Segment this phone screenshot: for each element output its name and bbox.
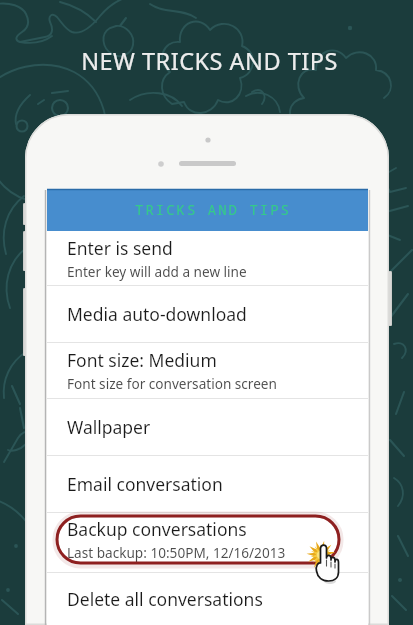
staticText: Email conversation — [67, 472, 223, 496]
staticText: TRICKS AND TIPS — [135, 200, 291, 219]
staticText: Backup conversations — [67, 517, 247, 541]
staticText: NEW TRICKS AND TIPS — [81, 45, 338, 77]
staticText: Enter is send — [67, 236, 173, 260]
button[interactable]: Media auto-download — [47, 286, 368, 342]
button[interactable]: Delete all conversations — [47, 573, 368, 625]
button[interactable]: Email conversation — [47, 456, 368, 512]
staticText: Last backup: 10:50PM, 12/16/2013 — [67, 543, 286, 562]
button[interactable]: Power — [388, 271, 392, 326]
staticText: Media auto-download — [67, 302, 247, 326]
button[interactable]: Volume up — [23, 231, 27, 271]
button[interactable]: Enter is send — [47, 231, 368, 285]
staticText: Font size for conversation screen — [67, 374, 277, 393]
button[interactable]: Silent switch — [23, 203, 27, 225]
button[interactable]: TRICKS AND TIPS — [47, 189, 368, 231]
button[interactable]: Backup conversations — [47, 513, 368, 572]
staticText: Delete all conversations — [67, 587, 263, 611]
staticText: Wallpaper — [67, 415, 151, 439]
staticText: Enter key will add a new line — [67, 262, 247, 281]
staticText: Font size: Medium — [67, 348, 217, 372]
button[interactable]: Font size: Medium — [47, 343, 368, 398]
button[interactable]: Wallpaper — [47, 399, 368, 455]
button[interactable]: Volume down — [23, 288, 27, 356]
